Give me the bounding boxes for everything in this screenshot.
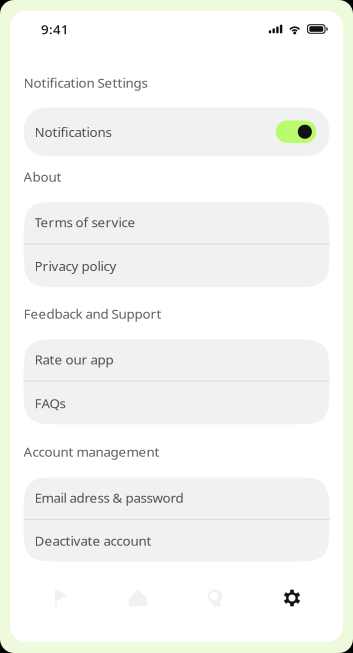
staticText: Privacy policy [35, 257, 117, 275]
staticText: 9:41 [41, 20, 69, 38]
button[interactable]: Activity [35, 583, 87, 613]
button[interactable]: Terms of service [24, 202, 329, 242]
button[interactable]: Deactivate account [24, 520, 329, 562]
staticText: About [24, 168, 62, 185]
button[interactable]: Search [189, 583, 241, 613]
staticText: Feedback and Support [24, 305, 162, 322]
button[interactable]: Settings [266, 583, 318, 613]
staticText: Notification Settings [24, 74, 148, 91]
staticText: Rate our app [35, 350, 114, 368]
button[interactable]: Privacy policy [24, 244, 329, 287]
button[interactable]: Rate our app [24, 339, 329, 379]
staticText: Terms of service [35, 213, 136, 231]
staticText: Deactivate account [35, 532, 152, 549]
button[interactable]: Notifications [24, 107, 329, 156]
staticText: Notifications [35, 123, 112, 141]
staticText: Account management [24, 443, 160, 460]
button[interactable]: FAQs [24, 382, 329, 424]
button[interactable]: Home [112, 583, 164, 613]
staticText: Email adress & password [35, 489, 184, 506]
staticText: FAQs [35, 394, 66, 412]
button[interactable]: Email adress & password [24, 477, 329, 518]
